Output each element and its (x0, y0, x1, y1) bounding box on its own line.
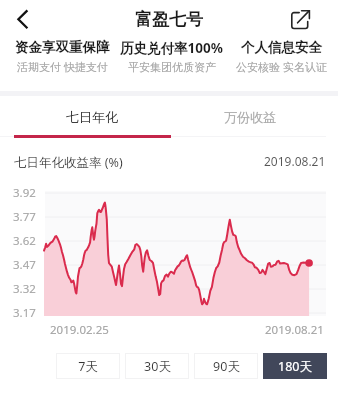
staticText: 富盈七号 (135, 9, 203, 30)
button[interactable]: Share (281, 0, 321, 38)
button[interactable]: 七日年化 (13, 99, 171, 135)
button[interactable]: 90天 (194, 353, 258, 379)
staticText: 2019.02.25 (50, 322, 109, 338)
staticText: 七日年化 (66, 109, 118, 125)
button[interactable]: 历史兑付率100% (113, 39, 229, 75)
staticText: 3.92 (13, 185, 36, 201)
button[interactable]: 万份收益 (171, 99, 329, 135)
staticText: 3.62 (13, 233, 36, 249)
staticText: 3.77 (13, 209, 36, 225)
staticText: 七日年化收益率 (%) (14, 154, 123, 171)
button[interactable]: 7天 (56, 353, 120, 379)
button[interactable]: 个人信息安全 (223, 39, 338, 75)
staticText: 2019.08.21 (264, 153, 326, 168)
staticText: 万份收益 (224, 109, 276, 125)
staticText: 2019.08.21 (265, 322, 324, 336)
button[interactable]: 180天 (263, 353, 327, 379)
staticText: 30天 (144, 358, 171, 375)
button[interactable]: 30天 (125, 353, 189, 379)
staticText: 个人信息安全 (241, 39, 322, 56)
staticText: 平安集团优质资产 (128, 60, 216, 74)
staticText: 180天 (278, 358, 312, 375)
staticText: 公安核验 实名认证 (236, 59, 327, 74)
staticText: 活期支付 快捷支付 (17, 59, 108, 74)
staticText: 资金享双重保障 (15, 39, 110, 56)
staticText: 3.17 (13, 305, 36, 321)
staticText: 3.47 (13, 257, 36, 273)
staticText: 3.32 (13, 281, 36, 297)
staticText: 7天 (78, 358, 98, 375)
button[interactable]: Back (3, 0, 43, 38)
staticText: 历史兑付率100% (120, 39, 223, 57)
button[interactable]: 资金享双重保障 (4, 39, 120, 75)
staticText: 90天 (213, 358, 240, 375)
